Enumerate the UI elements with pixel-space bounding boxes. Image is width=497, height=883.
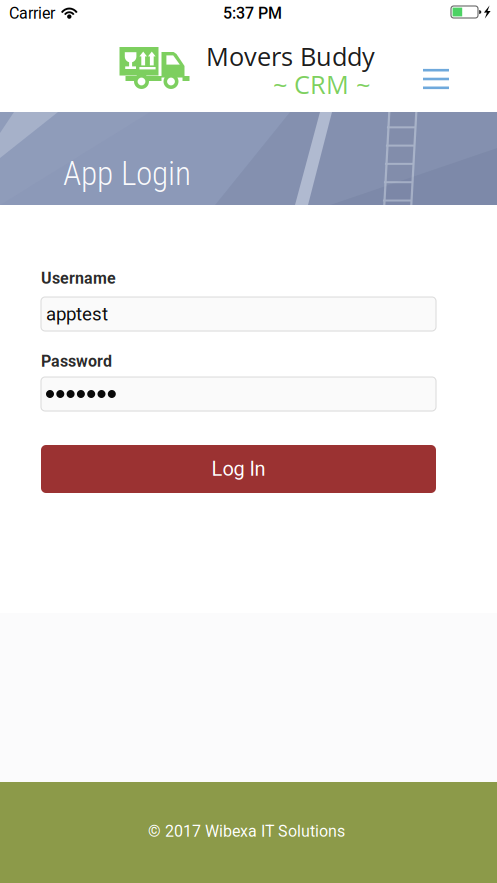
staticText: ~ CRM ~ [273, 67, 370, 101]
staticText: © 2017 Wibexa IT Solutions [148, 822, 345, 841]
staticText: Password [41, 352, 112, 371]
button[interactable]: Log In [41, 445, 436, 493]
button[interactable]: Menu [412, 56, 460, 102]
staticText: 5:37 PM [223, 4, 282, 23]
staticText: Username [41, 269, 116, 288]
staticText: App Login [63, 154, 191, 193]
staticText: apptest [46, 303, 108, 325]
staticText: Carrier [9, 4, 55, 23]
staticText: Movers Buddy [206, 39, 375, 73]
staticText: Log In [211, 457, 265, 481]
